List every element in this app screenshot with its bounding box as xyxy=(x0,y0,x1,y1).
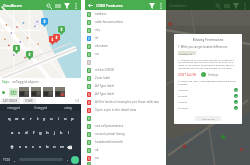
button[interactable]: Comma xyxy=(12,154,17,165)
button[interactable]: o xyxy=(62,111,69,126)
button[interactable]: u xyxy=(48,111,55,126)
button[interactable]: Camera xyxy=(178,99,238,105)
button[interactable]: a xyxy=(9,126,16,140)
button[interactable]: v xyxy=(37,140,44,154)
button[interactable]: city xyxy=(85,26,166,34)
button[interactable]: address xyxy=(85,10,166,18)
staticText: d xyxy=(25,130,28,136)
button[interactable]: x xyxy=(23,140,30,154)
button[interactable]: p xyxy=(69,111,76,126)
button[interactable]: All Type label xyxy=(85,82,166,90)
button[interactable]: e xyxy=(20,111,27,126)
staticText: GeoAlarm xyxy=(3,3,23,8)
button[interactable]: q xyxy=(6,111,13,126)
staticText: p xyxy=(71,116,74,122)
button[interactable]: d xyxy=(23,126,30,140)
button[interactable]: Period xyxy=(65,154,71,165)
button[interactable]: More options xyxy=(156,1,165,10)
staticText: u xyxy=(50,116,53,122)
button[interactable]: alt:name xyxy=(85,42,166,50)
button[interactable] xyxy=(85,114,166,122)
button[interactable]: r xyxy=(27,111,34,126)
staticText: 3. When the "OK" > the dialogue grant th… xyxy=(178,79,238,85)
button[interactable]: ok xyxy=(85,146,166,154)
button[interactable]: Zone label xyxy=(85,74,166,82)
button[interactable] xyxy=(31,87,41,97)
staticText: Missing Permissions xyxy=(178,38,238,42)
button[interactable]: b xyxy=(44,140,51,154)
button[interactable]: All the lands of examples per those with… xyxy=(85,98,166,106)
button[interactable]: no xyxy=(85,154,166,162)
button[interactable]: h xyxy=(44,126,51,140)
button[interactable]: Location xyxy=(178,87,238,93)
button[interactable]: CONTINUE xyxy=(195,116,221,121)
button[interactable]: m xyxy=(58,140,65,154)
button[interactable]: no xyxy=(85,50,166,58)
button[interactable]: g xyxy=(37,126,44,140)
button[interactable]: Add photo xyxy=(9,88,18,97)
button[interactable]: untagged xyxy=(0,104,27,111)
button[interactable]: ref:bic:20558 xyxy=(85,66,166,74)
button[interactable]: ?123 xyxy=(0,154,12,165)
button[interactable]: Back xyxy=(86,1,94,9)
button[interactable]: id xyxy=(85,34,166,42)
staticText: howdoesthismonth xyxy=(95,140,124,144)
button[interactable]: k xyxy=(58,126,65,140)
button[interactable]: t xyxy=(34,111,41,126)
button[interactable]: SHARE xyxy=(25,99,34,103)
button[interactable] xyxy=(19,87,29,97)
button[interactable]: c xyxy=(30,140,37,154)
button[interactable] xyxy=(85,162,166,165)
button[interactable]: l xyxy=(65,126,72,140)
button[interactable]: f xyxy=(30,126,37,140)
button[interactable]: y xyxy=(41,111,48,126)
staticText: Contacts xyxy=(178,106,189,109)
button[interactable]: not call parameters xyxy=(85,122,166,130)
button[interactable]: i xyxy=(55,111,62,126)
button[interactable]: untag xyxy=(54,104,81,111)
button[interactable]: second postal listing xyxy=(85,130,166,138)
button[interactable]: Shift xyxy=(7,140,16,154)
button[interactable]: z xyxy=(16,140,23,154)
button[interactable]: Storage xyxy=(178,93,238,99)
button[interactable]: ADD IMAGE xyxy=(3,99,18,103)
staticText: unTagged-objects xyxy=(12,80,39,84)
button[interactable]: Open a pin in the detail view xyxy=(85,106,166,114)
staticText: Open a pin in the detail view xyxy=(95,108,137,112)
staticText: ok xyxy=(95,148,99,152)
button[interactable]: Layers xyxy=(53,1,62,10)
staticText: not call parameters xyxy=(95,124,124,128)
button[interactable]: Untagged xyxy=(27,104,54,111)
button[interactable]: Enter xyxy=(71,156,79,164)
button[interactable]: s xyxy=(16,126,23,140)
button[interactable]: Search xyxy=(213,1,222,10)
staticText: GeoAlarm xyxy=(169,3,187,8)
staticText: Untagged xyxy=(34,106,48,110)
button[interactable]: More options xyxy=(71,1,80,10)
button[interactable]: Backspace xyxy=(65,140,74,154)
staticText: h xyxy=(46,130,49,136)
button[interactable] xyxy=(55,87,65,97)
button[interactable]: Search xyxy=(44,1,53,10)
button[interactable]: All Type label xyxy=(85,90,166,98)
button[interactable] xyxy=(85,58,166,66)
button[interactable]: j xyxy=(51,126,58,140)
button[interactable] xyxy=(43,87,53,97)
button[interactable]: Filter xyxy=(231,1,240,10)
staticText: ref:bic:20558 xyxy=(95,68,114,72)
button[interactable]: More options xyxy=(240,1,249,10)
button[interactable]: howdoesthismonth xyxy=(85,138,166,146)
button[interactable]: w xyxy=(13,111,20,126)
button[interactable]: addr:housenumber xyxy=(85,18,166,26)
staticText: Camera xyxy=(178,100,188,103)
button[interactable]: Filter xyxy=(62,1,71,10)
staticText: Storage xyxy=(178,94,188,97)
button[interactable]: Contacts xyxy=(178,105,238,111)
button[interactable]: DON'T ALLOW xyxy=(178,73,197,77)
staticText: . xyxy=(67,157,69,162)
button[interactable]: Layers xyxy=(222,1,231,10)
staticText: CONTINUE xyxy=(202,117,215,120)
button[interactable]: Filter xyxy=(147,1,156,10)
button[interactable]: n xyxy=(51,140,58,154)
